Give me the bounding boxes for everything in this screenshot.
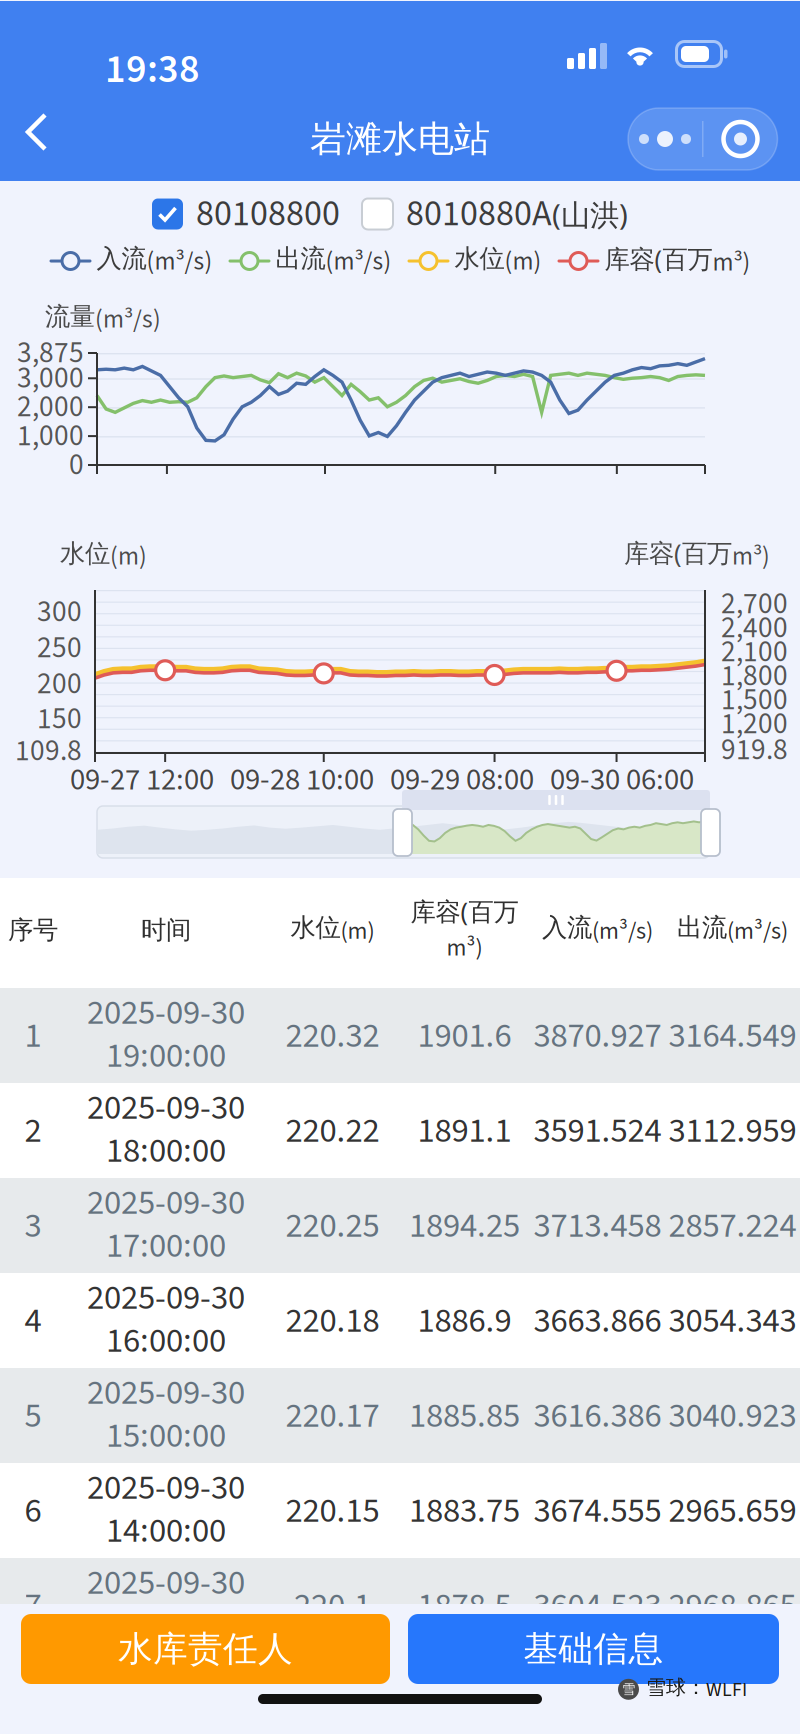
staticText: 3713.458 bbox=[533, 1201, 661, 1251]
staticText: 150 bbox=[37, 698, 82, 740]
staticText: 919.8 bbox=[721, 729, 788, 771]
button[interactable]: 80108800 bbox=[152, 191, 340, 237]
staticText: 3164.549 bbox=[668, 1011, 796, 1061]
staticText: 18:00:00 bbox=[106, 1126, 226, 1176]
staticText: 09-27 12:00 bbox=[70, 758, 214, 802]
staticText: 16:00:00 bbox=[106, 1316, 226, 1366]
button[interactable]: 1 bbox=[0, 988, 800, 1083]
button[interactable]: 出流(m³/s) bbox=[228, 244, 391, 278]
staticText: 入流(m³/s) bbox=[96, 243, 212, 279]
staticText: m³) bbox=[446, 931, 482, 965]
staticText: 库容(百万 bbox=[410, 894, 518, 928]
staticText: 3,875 bbox=[17, 332, 84, 374]
staticText: 2,000 bbox=[17, 386, 84, 428]
staticText: 2 bbox=[24, 1106, 41, 1156]
staticText: 2965.659 bbox=[668, 1486, 796, 1536]
staticText: 水位(m) bbox=[454, 243, 541, 279]
staticText: 出流(m³/s) bbox=[275, 243, 391, 279]
staticText: 1,000 bbox=[17, 415, 84, 457]
staticText: 14:00:00 bbox=[106, 1506, 226, 1556]
staticText: 3040.923 bbox=[668, 1391, 796, 1441]
staticText: 3591.524 bbox=[533, 1106, 661, 1156]
staticText: 3674.555 bbox=[533, 1486, 661, 1536]
staticText: 220.22 bbox=[285, 1106, 379, 1156]
staticText: 220.18 bbox=[285, 1296, 379, 1346]
staticText: 220.25 bbox=[285, 1201, 379, 1251]
staticText: 220.17 bbox=[285, 1391, 379, 1441]
staticText: 时间 bbox=[141, 914, 191, 946]
staticText: 1,500 bbox=[721, 679, 788, 721]
button[interactable]: 库容(百万m³) bbox=[557, 244, 750, 278]
button[interactable]: 定位 bbox=[703, 108, 777, 170]
button[interactable]: 8010880A(山洪) bbox=[362, 191, 628, 237]
button[interactable]: 水位(m) bbox=[407, 244, 541, 278]
staticText: 3 bbox=[24, 1201, 41, 1251]
staticText: 1 bbox=[24, 1011, 41, 1061]
staticText: 2,700 bbox=[721, 583, 788, 625]
button[interactable]: 更多 bbox=[628, 108, 702, 170]
staticText: 1878.5 bbox=[417, 1581, 511, 1631]
button[interactable]: 3 bbox=[0, 1178, 800, 1273]
staticText: 2,100 bbox=[721, 631, 788, 673]
staticText: 8010880A(山洪) bbox=[406, 189, 628, 239]
staticText: 序号 bbox=[8, 914, 58, 946]
staticText: 雪 bbox=[622, 1681, 635, 1698]
staticText: 1885.85 bbox=[409, 1391, 520, 1441]
staticText: 1894.25 bbox=[409, 1201, 520, 1251]
staticText: 入流(m³/s) bbox=[542, 912, 653, 948]
staticText: 库容(百万m³) bbox=[624, 536, 770, 574]
staticText: 200 bbox=[37, 663, 82, 705]
staticText: 水位(m) bbox=[60, 538, 147, 574]
staticText: 水位(m) bbox=[290, 912, 374, 948]
staticText: 3,000 bbox=[17, 357, 84, 399]
staticText: 300 bbox=[37, 591, 82, 633]
staticText: 3604.523 bbox=[533, 1581, 661, 1631]
staticText: 2025-09-30 bbox=[87, 1273, 245, 1323]
staticText: 2,400 bbox=[721, 607, 788, 649]
button[interactable]: 7 bbox=[0, 1558, 800, 1653]
staticText: 1,200 bbox=[721, 703, 788, 745]
staticText: 2857.224 bbox=[668, 1201, 796, 1251]
staticText: 岩滩水电站 bbox=[310, 116, 490, 162]
staticText: 库容(百万m³) bbox=[604, 242, 750, 280]
button[interactable]: 4 bbox=[0, 1273, 800, 1368]
staticText: 19:00:00 bbox=[106, 1031, 226, 1081]
staticText: 2025-09-30 bbox=[87, 1083, 245, 1133]
staticText: 09-29 08:00 bbox=[390, 758, 534, 802]
staticText: 2025-09-30 bbox=[87, 1463, 245, 1513]
button[interactable]: 水库责任人 bbox=[21, 1614, 390, 1684]
button[interactable]: 5 bbox=[0, 1368, 800, 1463]
staticText: 1901.6 bbox=[417, 1011, 511, 1061]
staticText: 4 bbox=[24, 1296, 41, 1346]
button[interactable]: 基础信息 bbox=[408, 1614, 779, 1684]
staticText: 3663.866 bbox=[533, 1296, 661, 1346]
staticText: 09-28 10:00 bbox=[230, 758, 374, 802]
staticText: 220.32 bbox=[285, 1011, 379, 1061]
staticText: 7 bbox=[24, 1581, 41, 1631]
staticText: 15:00:00 bbox=[106, 1411, 226, 1461]
staticText: 17:00:00 bbox=[106, 1221, 226, 1271]
staticText: 流量(m³/s) bbox=[45, 301, 161, 337]
button[interactable]: 入流(m³/s) bbox=[49, 244, 212, 278]
staticText: 6 bbox=[24, 1486, 41, 1536]
staticText: 3870.927 bbox=[533, 1011, 661, 1061]
staticText: 2968.865 bbox=[668, 1581, 796, 1631]
staticText: 1886.9 bbox=[417, 1296, 511, 1346]
button[interactable]: 返回 bbox=[0, 97, 78, 167]
staticText: 基础信息 bbox=[523, 1627, 663, 1671]
staticText: 出流(m³/s) bbox=[677, 912, 788, 948]
button[interactable]: 6 bbox=[0, 1463, 800, 1558]
staticText: 雪球：WLFI bbox=[646, 1675, 747, 1704]
staticText: 13:00:00 bbox=[106, 1601, 226, 1651]
staticText: 2025-09-30 bbox=[87, 1368, 245, 1418]
staticText: 3054.343 bbox=[668, 1296, 796, 1346]
staticText: 3616.386 bbox=[533, 1391, 661, 1441]
staticText: 水库责任人 bbox=[118, 1627, 293, 1671]
staticText: 2025-09-30 bbox=[87, 988, 245, 1038]
staticText: 220.1 bbox=[294, 1581, 371, 1631]
staticText: 1891.1 bbox=[417, 1106, 511, 1156]
button[interactable]: 2 bbox=[0, 1083, 800, 1178]
staticText: 1,800 bbox=[721, 655, 788, 697]
staticText: 250 bbox=[37, 627, 82, 669]
staticText: 2025-09-30 bbox=[87, 1178, 245, 1228]
